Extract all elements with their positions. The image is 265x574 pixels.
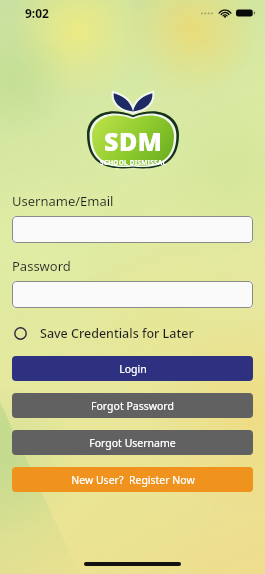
button[interactable]: Login xyxy=(12,356,253,381)
staticText: SCHOOL DISMISSAL xyxy=(100,158,167,167)
staticText: 9:02 xyxy=(25,5,49,21)
staticText: SDM xyxy=(104,124,163,158)
staticText: Forgot Password xyxy=(91,399,174,413)
staticText: Login xyxy=(119,362,147,376)
button[interactable] xyxy=(12,216,253,243)
staticText: Save Credentials for Later xyxy=(40,325,194,342)
button[interactable]: Save Credentials for Later xyxy=(12,322,196,345)
button[interactable]: Forgot Password xyxy=(12,393,253,418)
staticText: New User? Register Now xyxy=(71,473,195,487)
button[interactable]: Forgot Username xyxy=(12,430,253,455)
staticText: Username/Email xyxy=(12,192,114,210)
button[interactable] xyxy=(12,281,253,308)
staticText: M A N A G E R xyxy=(116,168,151,170)
button[interactable]: New User? Register Now xyxy=(12,467,253,492)
staticText: Forgot Username xyxy=(89,436,176,450)
staticText: Password xyxy=(12,257,71,275)
